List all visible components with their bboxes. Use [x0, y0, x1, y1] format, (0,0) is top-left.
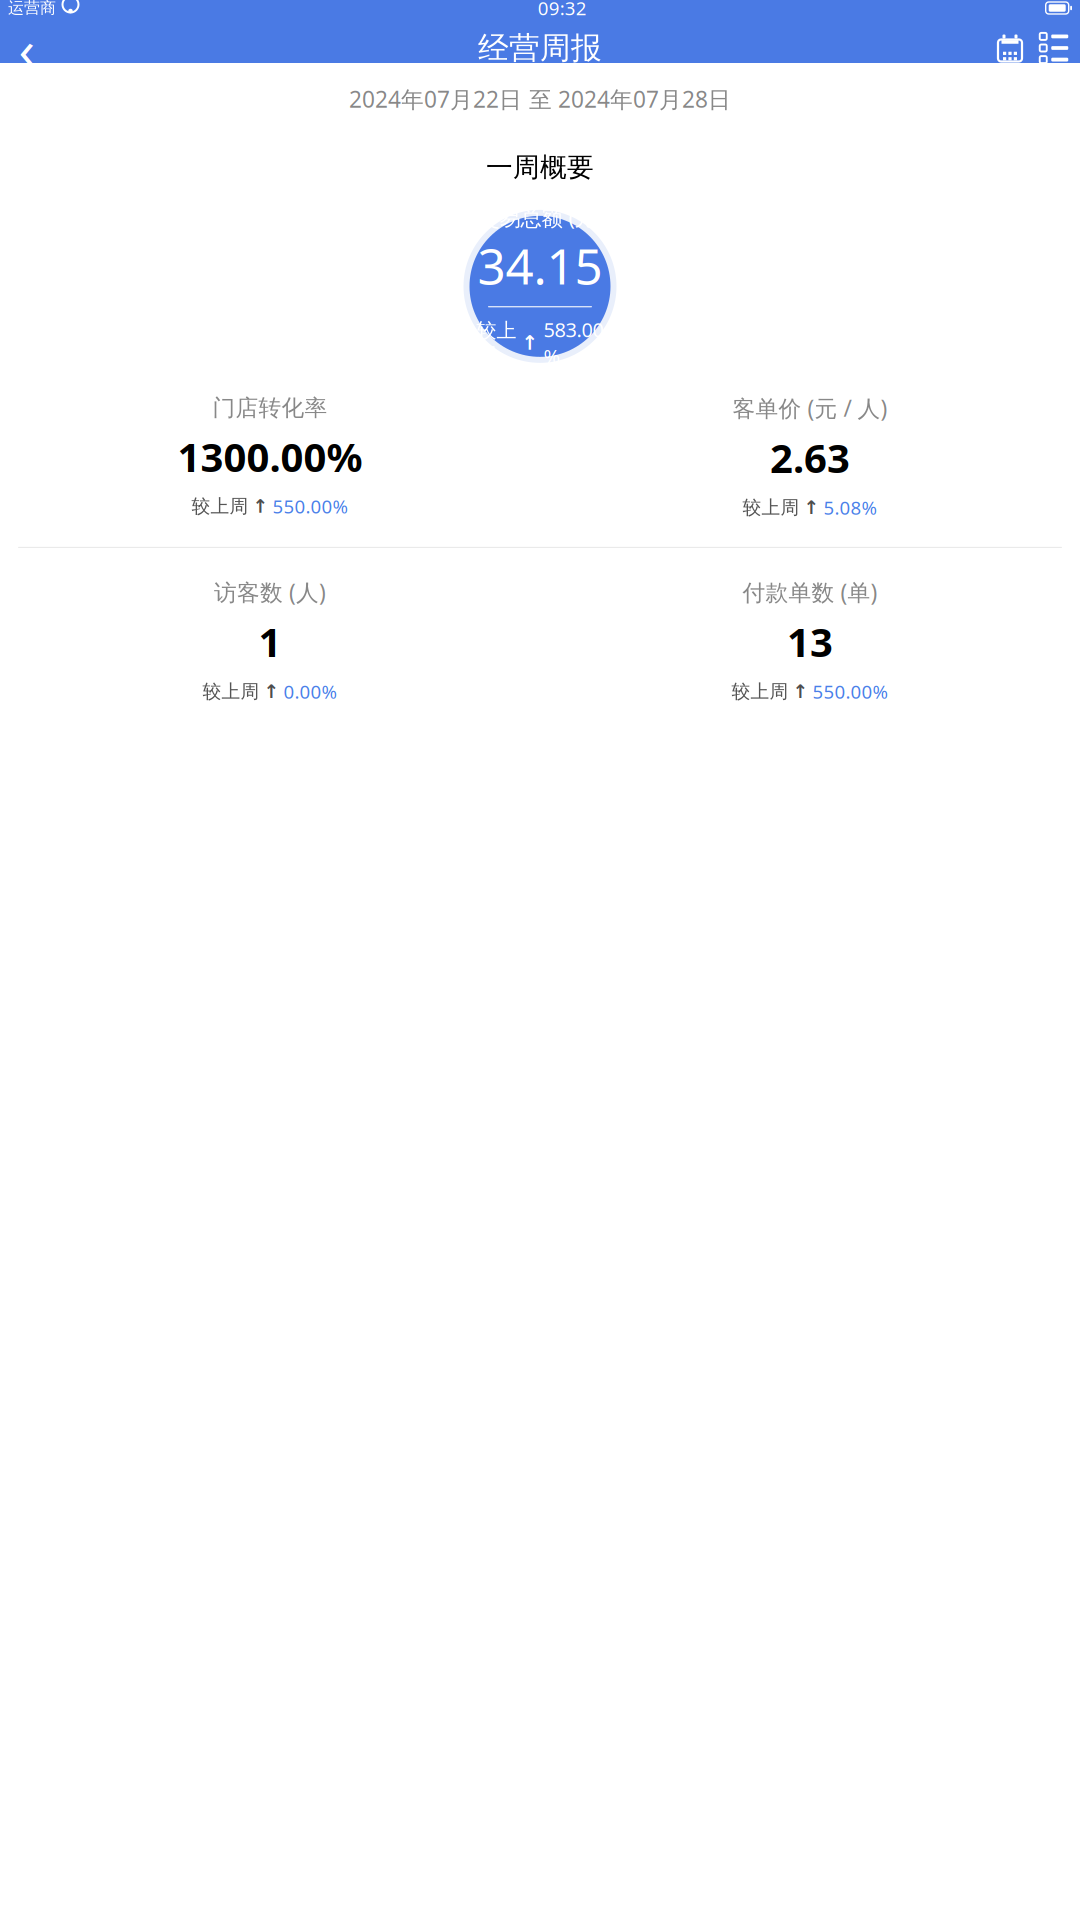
- staticText: 583.00%: [543, 316, 603, 369]
- staticText: ↑: [252, 496, 268, 517]
- button[interactable]: 报表列表: [1032, 27, 1076, 69]
- button[interactable]: 选择日期: [988, 27, 1032, 69]
- staticText: ↑: [803, 497, 819, 518]
- staticText: ↑: [521, 331, 538, 354]
- button[interactable]: 返回: [4, 27, 50, 69]
- staticText: ↑: [792, 681, 808, 702]
- staticText: 交易总额 (元): [478, 203, 601, 232]
- staticText: 付款单数 (单): [742, 577, 877, 607]
- staticText: 访客数 (人): [214, 577, 326, 607]
- staticText: ↑: [263, 681, 279, 702]
- staticText: 一周概要: [486, 151, 594, 184]
- staticText: 较上周: [191, 495, 248, 518]
- staticText: ‹: [18, 13, 35, 83]
- staticText: 运营商: [8, 0, 56, 18]
- staticText: 2024年07月22日 至 2024年07月28日: [349, 84, 731, 114]
- staticText: 5.08%: [823, 495, 877, 520]
- staticText: 经营周报: [478, 29, 602, 67]
- staticText: 1: [258, 615, 281, 668]
- staticText: 2.63: [770, 431, 850, 484]
- staticText: 09:32: [538, 0, 587, 20]
- staticText: 13: [787, 615, 833, 668]
- staticText: 较上周: [202, 680, 259, 703]
- staticText: 550.00%: [272, 494, 348, 519]
- staticText: 0.00%: [283, 679, 337, 704]
- staticText: 门店转化率: [212, 394, 327, 422]
- staticText: 1300.00%: [177, 430, 362, 483]
- staticText: 较上周: [731, 680, 788, 703]
- staticText: 较上周: [742, 496, 799, 519]
- staticText: 较上周: [476, 318, 516, 367]
- staticText: 客单价 (元 / 人): [732, 393, 887, 423]
- staticText: 34.15: [477, 233, 602, 298]
- staticText: 550.00%: [812, 679, 888, 704]
